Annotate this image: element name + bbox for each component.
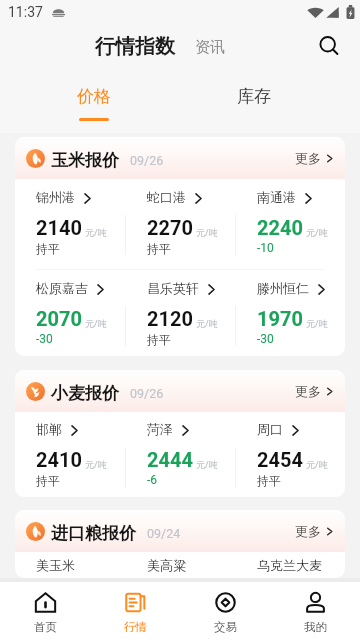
staticText: -30 [257,332,274,346]
button[interactable]: 行情 [90,582,180,640]
staticText: 我的 [304,620,327,634]
staticText: 昌乐英轩 [147,280,199,296]
staticText: 更多 [295,383,321,399]
staticText: 元/吨 [85,227,107,238]
staticText: 2240 [257,216,303,239]
staticText: 2410 [36,448,82,471]
staticText: 2070 [36,307,82,330]
staticText: 更多 [295,150,321,166]
staticText: 蛇口港 [147,189,186,205]
staticText: 交易 [214,620,237,634]
staticText: 资讯 [195,38,225,57]
staticText: 09/24 [147,526,181,541]
staticText: 2120 [147,307,193,330]
staticText: 小麦报价 [51,383,119,404]
staticText: 库存 [237,86,271,107]
staticText: 元/吨 [196,459,218,470]
staticText: 元/吨 [85,459,107,470]
staticText: 美玉米 [36,557,75,573]
staticText: 菏泽 [147,421,173,437]
button[interactable]: 我的 [270,582,360,640]
staticText: 滕州恒仁 [257,280,309,296]
staticText: 2444 [147,448,193,471]
staticText: 进口粮报价 [51,523,136,544]
staticText: 首页 [34,620,57,634]
staticText: 周口 [257,421,283,437]
staticText: 南通港 [257,189,296,205]
staticText: 行情指数 [95,34,175,59]
button[interactable]: Search [315,32,343,60]
button[interactable]: 价格 [14,68,174,133]
staticText: -6 [147,473,158,487]
staticText: 乌克兰大麦 [257,557,322,573]
staticText: 元/吨 [85,318,107,329]
staticText: 11:37 [8,4,43,20]
staticText: 元/吨 [196,318,218,329]
staticText: -10 [257,241,274,255]
button[interactable]: 首页 [0,582,90,640]
staticText: 邯郸 [36,421,62,437]
staticText: 持平 [257,473,281,488]
staticText: 2454 [257,448,303,471]
staticText: 2140 [36,216,82,239]
button[interactable]: 更多 [295,523,334,539]
staticText: 1970 [257,307,303,330]
staticText: 09/26 [130,153,164,168]
button[interactable]: 更多 [295,150,334,166]
staticText: 持平 [147,332,171,347]
staticText: 更多 [295,523,321,539]
button[interactable]: 更多 [295,383,334,399]
staticText: 松原嘉吉 [36,280,88,296]
staticText: 持平 [36,241,60,256]
staticText: 锦州港 [36,189,75,205]
staticText: 美高粱 [147,557,186,573]
staticText: 元/吨 [306,227,328,238]
staticText: 价格 [77,86,111,107]
staticText: 元/吨 [196,227,218,238]
staticText: 09/26 [130,386,164,401]
staticText: 持平 [36,473,60,488]
button[interactable]: 交易 [180,582,270,640]
staticText: -30 [36,332,53,346]
button[interactable]: 库存 [174,68,334,133]
staticText: 玉米报价 [51,150,119,171]
staticText: 行情 [124,620,147,634]
staticText: 元/吨 [306,318,328,329]
staticText: 元/吨 [306,459,328,470]
staticText: 持平 [147,241,171,256]
staticText: 2270 [147,216,193,239]
